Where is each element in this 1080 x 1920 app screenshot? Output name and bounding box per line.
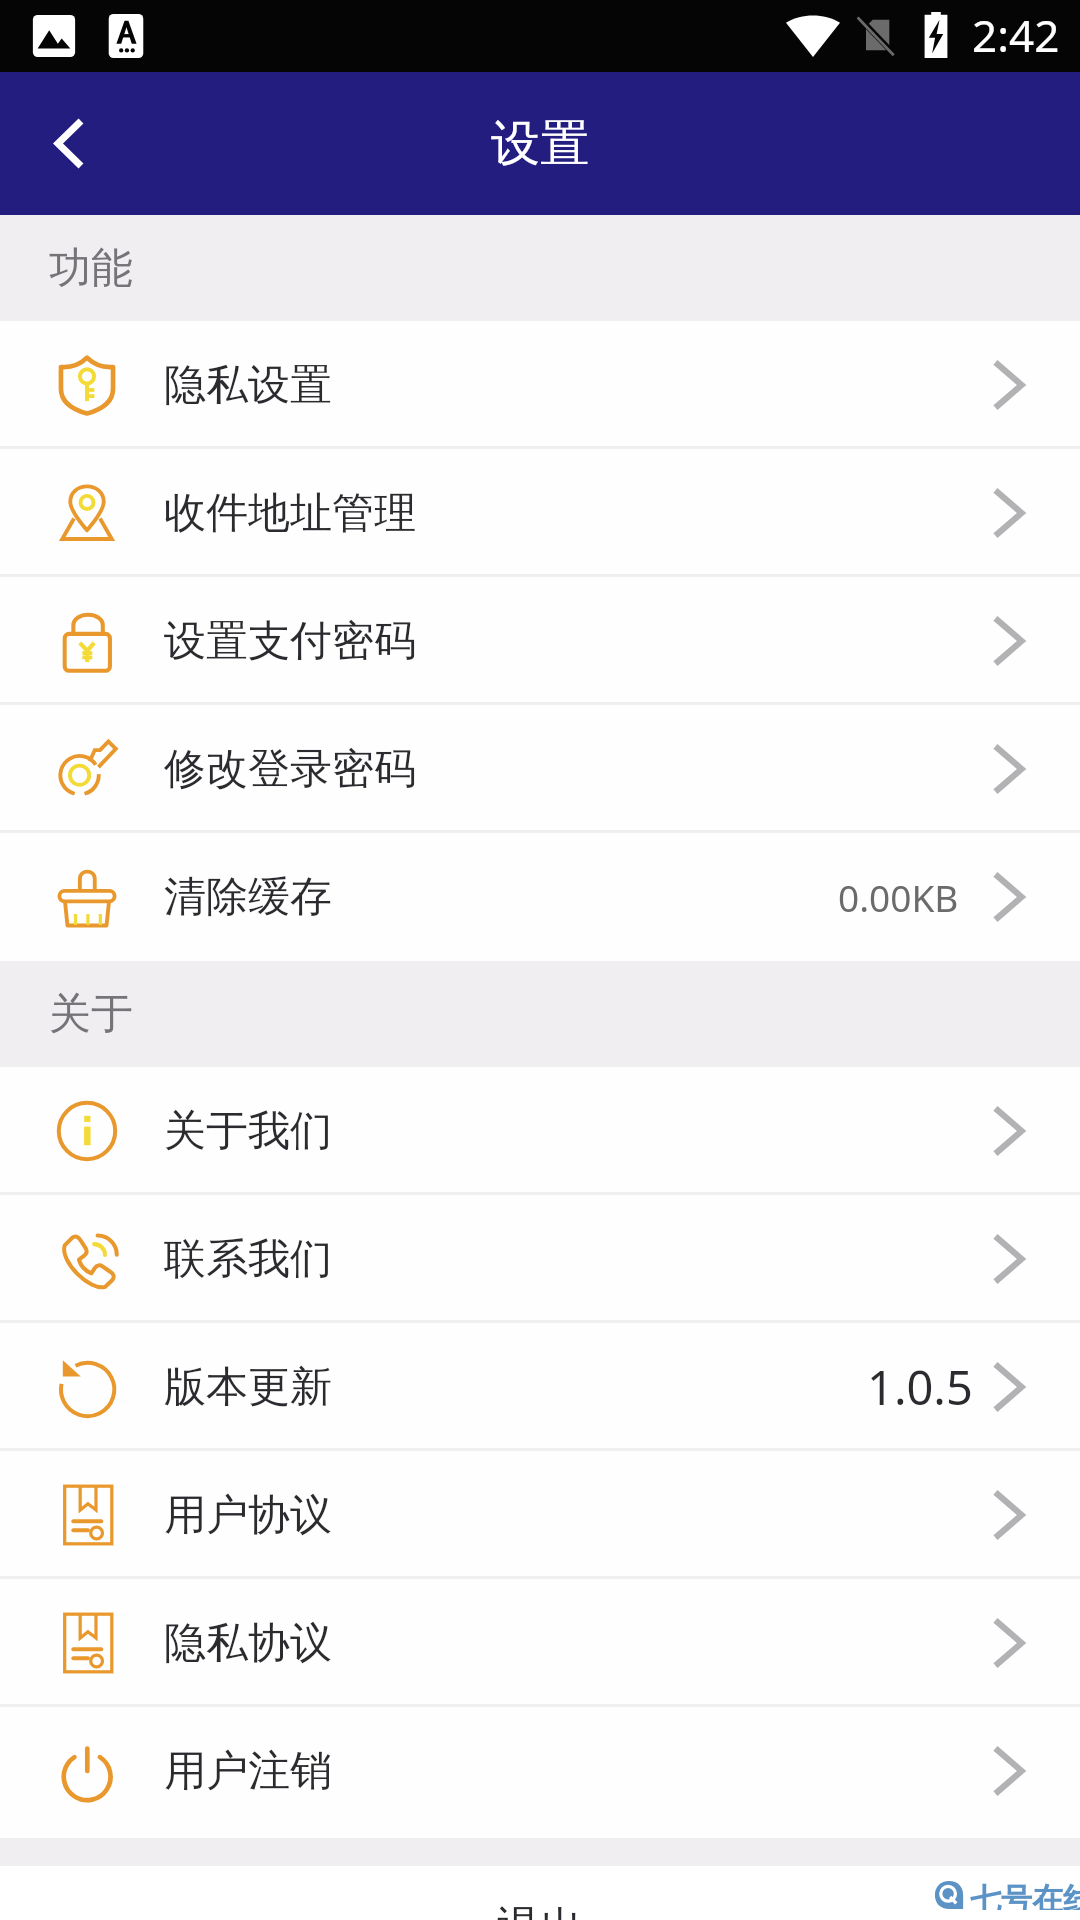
button[interactable]: 收件地址管理 [0,449,1080,577]
staticText: 用户协议 [164,1489,332,1542]
staticText: 0.00KB [838,872,959,922]
staticText: 设置 [491,113,589,175]
staticText: 设置支付密码 [164,615,416,668]
staticText: 2:42 [972,5,1060,65]
staticText: 退出 [496,1901,584,1920]
staticText: 用户注销 [164,1745,332,1798]
staticText: 七号在线 [970,1880,1080,1910]
staticText: 功能 [49,242,133,295]
button[interactable]: 用户注销 [0,1707,1080,1835]
button[interactable]: 隐私设置 [0,321,1080,449]
button[interactable]: 隐私协议 [0,1579,1080,1707]
staticText: 关于我们 [164,1105,332,1158]
staticText: 关于 [49,988,133,1041]
button[interactable]: 清除缓存 [0,833,1080,961]
staticText: 清除缓存 [164,871,332,924]
staticText: 版本更新 [164,1361,332,1414]
button[interactable]: 用户协议 [0,1451,1080,1579]
staticText: 隐私设置 [164,359,332,412]
button[interactable]: 联系我们 [0,1195,1080,1323]
button[interactable]: 设置支付密码 [0,577,1080,705]
staticText: 联系我们 [164,1233,332,1286]
button[interactable]: 关于我们 [0,1067,1080,1195]
button[interactable]: Back [0,72,134,215]
staticText: 1.0.5 [867,1355,973,1419]
button[interactable]: 修改登录密码 [0,705,1080,833]
staticText: 收件地址管理 [164,487,416,540]
staticText: 修改登录密码 [164,743,416,796]
button[interactable]: 版本更新 [0,1323,1080,1451]
staticText: 隐私协议 [164,1617,332,1670]
